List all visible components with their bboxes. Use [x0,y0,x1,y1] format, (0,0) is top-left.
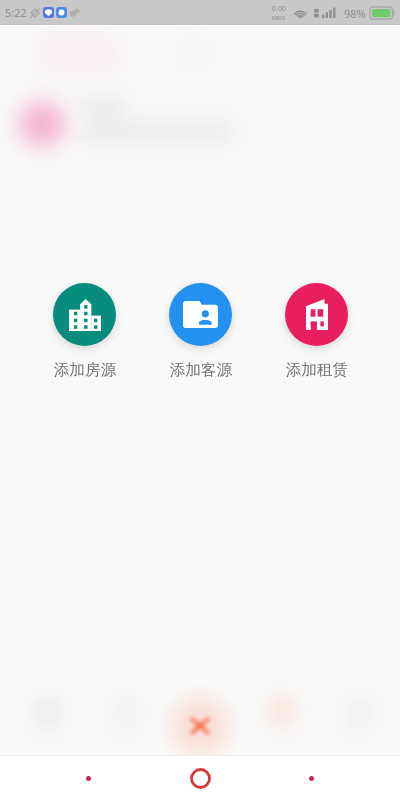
button[interactable]: Recents [299,766,323,790]
staticText: KB/S [272,14,286,22]
staticText: 0.00 [272,4,286,14]
staticText: 5:22 [5,5,27,20]
button[interactable]: Close [158,684,242,768]
staticText: 添加客源 [170,360,232,380]
button[interactable]: 添加租赁 [281,279,352,380]
button[interactable]: Back [76,766,100,790]
button[interactable]: 添加房源 [49,279,120,380]
staticText: 98% [344,6,366,21]
staticText: 添加租赁 [286,360,348,380]
button[interactable]: 添加客源 [165,279,236,380]
staticText: 添加房源 [54,360,116,380]
button[interactable]: Home [184,762,216,794]
